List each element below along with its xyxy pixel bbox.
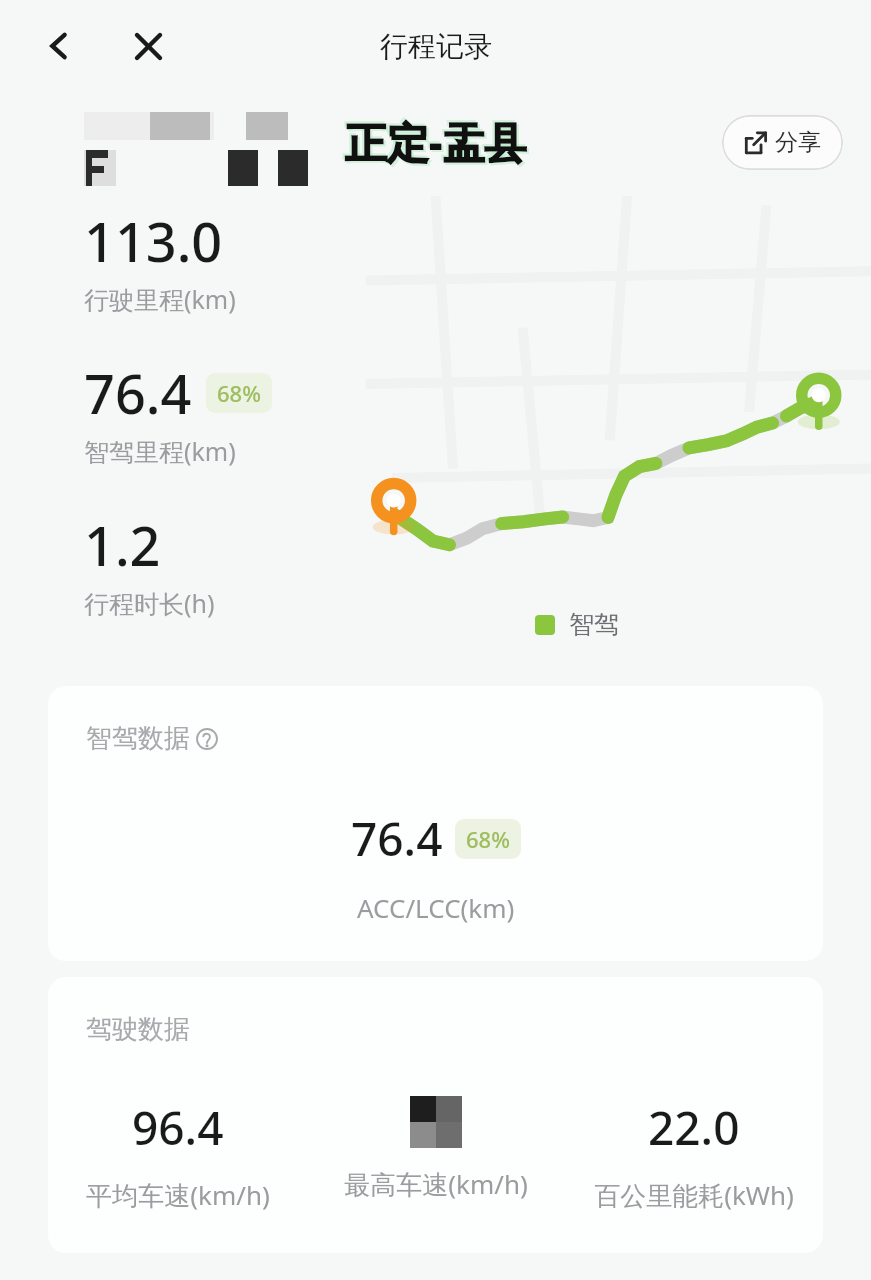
button[interactable]: 驾驶数据 [48,977,823,1253]
staticText: 智驾 [569,609,619,640]
staticText: ACC/LCC(km) [357,890,515,925]
button[interactable]: 分享 [722,115,843,170]
staticText: 正定-盂县 [345,113,527,170]
staticText: 22.0 [648,1096,740,1159]
staticText: 行程时长(h) [84,586,215,620]
staticText: 68% [217,378,261,408]
button[interactable]: Close [124,22,172,70]
staticText: 正定-盂县 [343,111,525,168]
staticText: 行驶里程(km) [84,282,236,316]
button[interactable]: 智驾数据 [48,686,823,961]
staticText: 百公里能耗(kWh) [594,1177,794,1213]
staticText: 113.0 [84,204,223,278]
staticText: 平均车速(km/h) [86,1177,270,1213]
staticText: 68% [466,824,510,854]
staticText: 智驾里程(km) [84,434,236,468]
staticText: 76.4 [351,807,443,870]
staticText: 智驾数据 [86,722,190,755]
staticText: 最高车速(km/h) [344,1166,528,1202]
button[interactable]: Back [36,23,82,69]
staticText: 1.2 [84,508,161,582]
staticText: 分享 [775,128,821,157]
staticText: 76.4 [84,356,192,430]
staticText: 96.4 [132,1096,224,1159]
staticText: 驾驶数据 [86,1013,190,1046]
staticText: 行程记录 [380,29,492,64]
staticText: 正定-盂县 [347,115,529,172]
